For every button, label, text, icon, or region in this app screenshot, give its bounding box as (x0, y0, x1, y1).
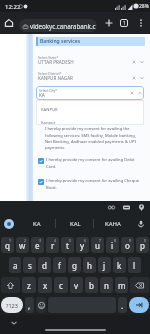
staticText: 28% (139, 3, 149, 10)
staticText: Select District* (38, 71, 62, 76)
button[interactable]: i (106, 237, 119, 253)
staticText: u (95, 240, 100, 251)
staticText: I hereby provide my consent for availing… (46, 178, 142, 190)
button[interactable]: New tab (102, 16, 116, 30)
button[interactable]: Home (2, 16, 16, 30)
button[interactable]: a (9, 257, 21, 273)
staticText: KAHA (105, 220, 121, 228)
button[interactable]: s (23, 257, 36, 273)
staticText: y (80, 240, 85, 251)
button[interactable]: KANPUR (36, 104, 144, 115)
button[interactable]: KAL (56, 212, 94, 235)
button[interactable]: Shift (1, 277, 20, 293)
button[interactable]: KA (17, 212, 56, 235)
button[interactable]: Select State* (38, 55, 144, 68)
staticText: 12:22 (5, 3, 21, 11)
button[interactable]: l (128, 257, 141, 273)
button[interactable]: v (70, 277, 83, 293)
button[interactable]: . (118, 297, 127, 313)
staticText: e (35, 240, 40, 251)
staticText: KAL (70, 220, 81, 228)
button[interactable]: m (115, 277, 128, 293)
button[interactable]: Symbols (1, 297, 23, 313)
staticText: 1 (123, 20, 126, 26)
button[interactable]: Switch tabs (117, 16, 131, 30)
button[interactable]: Enter (129, 297, 149, 313)
button[interactable]: Backspace (130, 277, 149, 293)
staticText: j (103, 260, 106, 271)
button[interactable]: Clipboard (106, 202, 116, 212)
button[interactable]: , (25, 297, 34, 313)
button[interactable]: Select District* (38, 71, 144, 84)
button[interactable]: I hereby provide my consent for availing… (38, 157, 142, 169)
staticText: c (59, 280, 63, 291)
button[interactable]: Voice input (132, 212, 150, 235)
staticText: q (5, 240, 10, 251)
staticText: z (27, 280, 31, 291)
button[interactable]: t (61, 237, 74, 253)
button[interactable]: Select City* (36, 86, 144, 100)
button[interactable]: p (136, 237, 149, 253)
staticText: I hereby provide my consent for availing… (45, 126, 142, 150)
staticText: v (74, 280, 79, 291)
staticText: l (133, 260, 136, 271)
staticText: o (125, 240, 130, 251)
button[interactable]: d (38, 257, 51, 273)
staticText: 1 (9, 238, 12, 243)
button[interactable]: z (22, 277, 36, 293)
button[interactable]: Gboard settings (0, 212, 17, 235)
button[interactable]: Banking services (36, 37, 145, 46)
button[interactable]: b (85, 277, 98, 293)
staticText: 3 (39, 238, 42, 243)
staticText: Select State* (38, 55, 59, 60)
button[interactable]: h (83, 257, 96, 273)
staticText: 9 (129, 238, 132, 243)
button[interactable]: w (16, 237, 29, 253)
staticText: p (140, 240, 145, 251)
button[interactable]: x (38, 277, 52, 293)
button[interactable]: o (121, 237, 134, 253)
button[interactable]: c (54, 277, 68, 293)
staticText: ?123 (6, 302, 18, 309)
button[interactable]: r (46, 237, 59, 253)
button[interactable]: n (100, 277, 113, 293)
staticText: g (72, 260, 77, 271)
staticText: 2 (24, 238, 27, 243)
button[interactable]: f (53, 257, 66, 273)
staticText: 0 (144, 238, 147, 243)
button[interactable]: KAHA (94, 212, 132, 235)
button[interactable]: Kanpur (36, 117, 144, 128)
button[interactable]: Payments (121, 202, 131, 212)
staticText: KA (39, 92, 45, 98)
button[interactable]: k (113, 257, 126, 273)
staticText: Select City* (39, 88, 58, 93)
staticText: . (121, 300, 124, 311)
button[interactable]: y (76, 237, 89, 253)
staticText: 5 (69, 238, 72, 243)
button[interactable]: Emoji (36, 297, 46, 313)
button[interactable]: Hide keyboard (8, 317, 20, 329)
staticText: t (66, 240, 69, 251)
button[interactable]: Location (136, 202, 146, 212)
staticText: , (28, 300, 31, 311)
staticText: 7 (99, 238, 102, 243)
staticText: b (89, 280, 94, 291)
button[interactable]: g (68, 257, 81, 273)
staticText: m (118, 280, 126, 291)
button[interactable]: j (98, 257, 111, 273)
button[interactable]: videokyc.canarabank.com/ (19, 19, 97, 32)
staticText: 6 (84, 238, 87, 243)
staticText: w (19, 240, 26, 251)
button[interactable]: u (91, 237, 104, 253)
staticText: d (42, 260, 47, 271)
button[interactable]: q (1, 237, 14, 253)
staticText: KANPUR NAGAR (38, 75, 73, 81)
button[interactable]: I hereby provide my consent for availing… (45, 126, 142, 150)
staticText: f (58, 260, 61, 271)
button[interactable]: I hereby provide my consent for availing… (38, 178, 142, 190)
button[interactable]: e (31, 237, 44, 253)
button[interactable]: More options (134, 16, 147, 29)
staticText: r (51, 240, 55, 251)
staticText: n (104, 280, 109, 291)
